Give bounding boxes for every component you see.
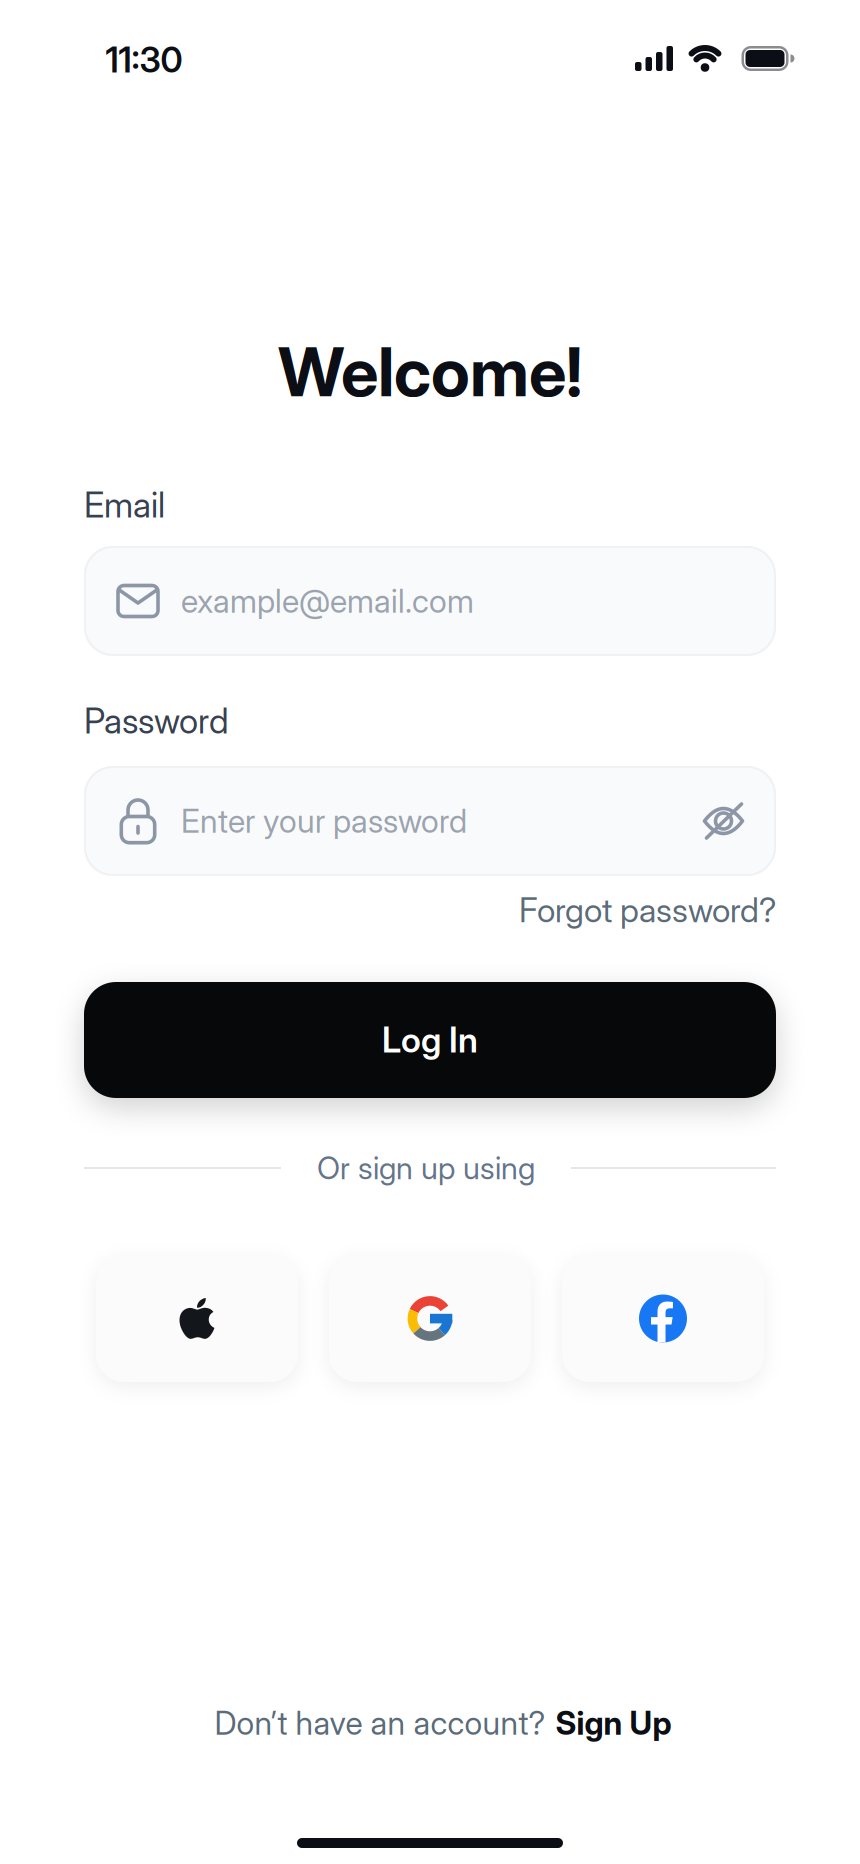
staticText: Password xyxy=(84,701,229,741)
staticText: 11:30 xyxy=(105,40,182,80)
button[interactable]: Log In xyxy=(84,982,776,1098)
button[interactable]: Show password xyxy=(703,803,744,838)
button[interactable]: Don’t have an account? xyxy=(201,1703,658,1743)
staticText: Forgot password? xyxy=(519,890,776,930)
staticText: Don’t have an account? xyxy=(214,1704,545,1742)
staticText: Enter your password xyxy=(181,802,467,840)
staticText: Welcome! xyxy=(278,333,582,411)
staticText: Sign Up xyxy=(555,1704,671,1742)
staticText: example@email.com xyxy=(181,582,474,620)
staticText: Or sign up using xyxy=(317,1150,535,1186)
button[interactable]: Sign up with Apple xyxy=(96,1255,298,1382)
button[interactable]: Sign up with Google xyxy=(329,1255,531,1382)
staticText: Email xyxy=(84,485,165,525)
button[interactable]: Sign up with Facebook xyxy=(562,1255,764,1382)
button[interactable]: Forgot password? xyxy=(519,890,776,930)
staticText: Log In xyxy=(382,1020,478,1060)
